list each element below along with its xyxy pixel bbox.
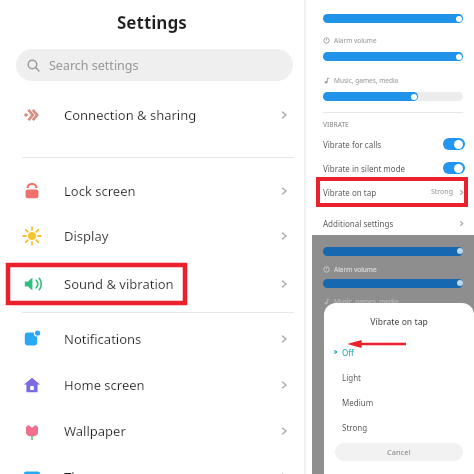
staticText: Light [342,372,362,383]
staticText: Music, games, media [334,76,399,85]
button[interactable]: Vibrate in silent mode [306,157,474,179]
staticText: Notifications [64,330,142,348]
button[interactable]: Sound & vibration [0,265,304,303]
button[interactable]: Medium [324,391,474,413]
button[interactable]: Search settings [16,49,293,81]
staticText: Settings [117,11,187,34]
staticText: Alarm volume [334,36,377,45]
staticText: Home screen [64,376,145,394]
button[interactable]: Home screen [0,366,304,404]
staticText: Vibrate on tap [324,316,474,328]
other: Arrow pointing to Off [346,338,406,350]
staticText: Vibrate for calls [323,139,382,150]
staticText: Sound & vibration [64,275,174,293]
button[interactable]: Wallpaper [0,412,304,450]
button[interactable]: Notifications [0,320,304,358]
staticText: Search settings [49,57,139,74]
button[interactable]: Vibrate on tap [306,181,474,203]
staticText: Connection & sharing [64,106,197,124]
button[interactable]: Cancel [335,443,463,461]
button[interactable]: Light [324,366,474,388]
staticText: Strong [342,422,368,433]
staticText: Alarm volume [334,265,377,274]
staticText: Vibrate on tap [323,187,377,198]
staticText: Display [64,227,109,245]
staticText: Off [342,347,354,358]
staticText: Vibrate in silent mode [323,163,406,174]
button[interactable]: Vibrate for calls [306,133,474,155]
staticText: Additional settings [323,218,394,229]
button[interactable]: Connection & sharing [0,96,304,134]
staticText: Themes [64,468,113,474]
staticText: Medium [342,397,374,408]
button[interactable]: Off [324,341,474,363]
staticText: VIBRATE [323,120,349,129]
button[interactable]: Themes [0,458,304,474]
button[interactable]: Lock screen [0,172,304,210]
button[interactable]: Display [0,217,304,255]
button[interactable]: Strong [324,416,474,438]
button[interactable]: Additional settings [306,213,474,233]
staticText: Music, games, media [334,297,399,306]
staticText: Strong [431,187,453,197]
staticText: Cancel [387,447,411,457]
staticText: Wallpaper [64,422,126,440]
staticText: Lock screen [64,182,136,200]
